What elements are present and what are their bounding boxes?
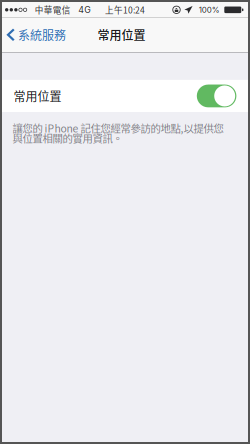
staticText: 常用位置 bbox=[13, 87, 61, 105]
staticText: 系統服務 bbox=[18, 26, 66, 43]
staticText: 100% bbox=[199, 5, 220, 15]
staticText: 上午10:24 bbox=[105, 4, 145, 16]
button[interactable]: 系統服務 bbox=[2, 18, 74, 52]
staticText: 4G bbox=[78, 4, 91, 15]
staticText: 讓您的 iPhone 記住您經常參訪的地點,以提供您與位置相關的實用資訊。 bbox=[12, 123, 223, 143]
staticText: 常用位置 bbox=[97, 26, 145, 43]
staticText: 中華電信 bbox=[35, 4, 71, 16]
button[interactable]: 常用位置 bbox=[2, 80, 248, 112]
